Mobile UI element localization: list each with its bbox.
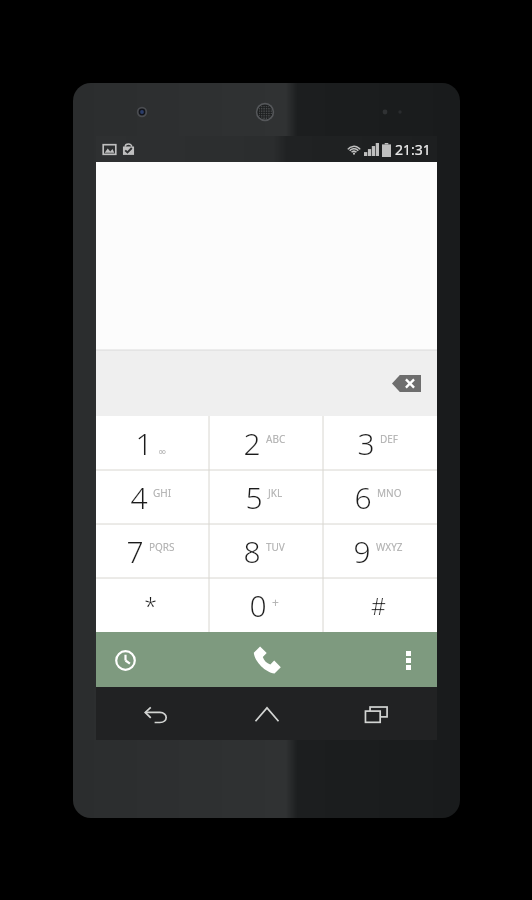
button[interactable]: Home <box>246 693 288 735</box>
staticText: 5 <box>245 477 263 518</box>
button[interactable]: 4 <box>96 470 209 524</box>
button[interactable]: # <box>323 578 437 632</box>
button[interactable]: 3 <box>323 416 437 470</box>
staticText: 21:31 <box>395 140 431 159</box>
staticText: GHI <box>153 486 172 500</box>
button[interactable]: Call history <box>108 643 142 677</box>
button[interactable]: 1 <box>96 416 209 470</box>
staticText: * <box>144 590 157 621</box>
button[interactable]: 7 <box>96 524 209 578</box>
staticText: 8 <box>243 531 261 572</box>
button[interactable]: 2 <box>209 416 323 470</box>
button[interactable]: Back <box>136 693 178 735</box>
staticText: 2 <box>243 423 261 464</box>
button[interactable]: More options <box>391 643 425 677</box>
staticText: + <box>272 594 279 610</box>
staticText: 3 <box>357 423 375 464</box>
button[interactable]: * <box>96 578 209 632</box>
staticText: TUV <box>266 540 285 554</box>
staticText: WXYZ <box>376 540 403 554</box>
button[interactable]: 8 <box>209 524 323 578</box>
staticText: ∞ <box>158 446 167 458</box>
staticText: 0 <box>249 585 267 626</box>
staticText: ABC <box>266 432 286 446</box>
staticText: # <box>371 590 386 621</box>
button[interactable]: 5 <box>209 470 323 524</box>
staticText: 4 <box>130 477 148 518</box>
button[interactable]: 9 <box>323 524 437 578</box>
button[interactable]: Recent apps <box>355 693 397 735</box>
staticText: 9 <box>353 531 371 572</box>
staticText: 7 <box>126 531 144 572</box>
button[interactable]: Backspace <box>392 375 421 392</box>
staticText: MNO <box>377 486 402 500</box>
staticText: 6 <box>354 477 372 518</box>
button[interactable]: 0 <box>209 578 323 632</box>
staticText: PQRS <box>149 540 175 554</box>
staticText: JKL <box>268 486 283 500</box>
button[interactable]: 6 <box>323 470 437 524</box>
staticText: 1 <box>135 423 153 464</box>
staticText: DEF <box>380 432 399 446</box>
button[interactable]: Call <box>244 637 290 683</box>
